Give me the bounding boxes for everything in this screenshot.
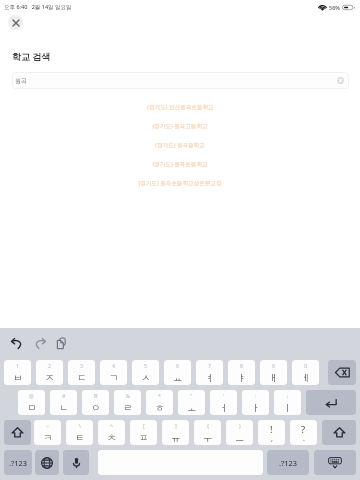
button[interactable]: 원곡	[12, 72, 349, 89]
button[interactable]: ~	[34, 420, 61, 445]
button[interactable]: (경기도) 원곡고등학교	[0, 116, 360, 135]
staticText: .?123	[9, 458, 27, 468]
button[interactable]: *	[146, 390, 173, 415]
staticText: 56%	[329, 4, 340, 11]
button[interactable]: 다시 실행	[31, 335, 47, 351]
button[interactable]: 8	[228, 360, 255, 385]
staticText: (경기도) 원곡초등학교성은분교장	[138, 179, 222, 187]
staticText: ㅈ	[45, 372, 55, 384]
button[interactable]: {	[194, 420, 221, 445]
staticText: ㅜ	[203, 432, 213, 444]
staticText: ㅁ	[27, 402, 37, 414]
button[interactable]: 시프트	[322, 420, 356, 445]
button[interactable]: (경기도) 원곡초등학교	[0, 154, 360, 173]
staticText: (경기도) 안산원곡초등학교	[147, 103, 214, 111]
staticText: ㅑ	[237, 372, 247, 384]
button[interactable]: .?123	[267, 450, 309, 475]
button[interactable]: (경기도) 안산원곡초등학교	[0, 97, 360, 116]
button[interactable]: ]	[162, 420, 189, 445]
button[interactable]: #	[50, 390, 77, 415]
staticText: '	[223, 392, 225, 399]
staticText: ㅕ	[205, 372, 215, 384]
staticText: 2	[48, 362, 51, 369]
staticText: 5	[144, 362, 147, 369]
staticText: ?	[301, 423, 306, 436]
button[interactable]: 언어 변경	[35, 450, 59, 475]
button[interactable]: 7	[196, 360, 223, 385]
staticText: {	[207, 422, 209, 429]
staticText: 6	[176, 362, 179, 369]
staticText: #	[62, 392, 66, 399]
staticText: 7	[208, 362, 211, 369]
button[interactable]: }	[226, 420, 253, 445]
staticText: ㅎ	[155, 402, 165, 414]
button[interactable]: ;	[274, 390, 301, 415]
staticText: ㅊ	[107, 432, 117, 444]
staticText: ,	[271, 434, 273, 444]
button[interactable]: 키보드 숨기기	[314, 450, 356, 475]
button[interactable]: :	[242, 390, 269, 415]
staticText: (경기도) 원곡고등학교	[152, 122, 208, 130]
staticText: 오후 6:40 2월 14일 일요일	[4, 3, 72, 11]
staticText: :	[255, 392, 257, 399]
button[interactable]: [	[130, 420, 157, 445]
button[interactable]: 붙여넣기	[53, 335, 69, 351]
button[interactable]: (경기도) 원곡중학교	[0, 135, 360, 154]
staticText: ₩	[94, 392, 98, 399]
staticText: ㅅ	[141, 372, 151, 384]
button[interactable]: 시프트	[4, 420, 31, 445]
button[interactable]: \	[66, 420, 93, 445]
staticText: ㄴ	[59, 402, 69, 414]
button[interactable]: 3	[68, 360, 95, 385]
staticText: (경기도) 원곡초등학교	[152, 160, 208, 168]
staticText: ㅂ	[13, 372, 23, 384]
staticText: ㅇ	[91, 402, 101, 414]
staticText: ㅠ	[171, 432, 181, 444]
button[interactable]: &	[114, 390, 141, 415]
button[interactable]: ^	[98, 420, 125, 445]
staticText: .?123	[279, 458, 297, 468]
button[interactable]: (경기도) 원곡초등학교성은분교장	[0, 173, 360, 192]
staticText: ㅓ	[219, 402, 229, 414]
button[interactable]: 0	[292, 360, 319, 385]
staticText: ㅡ	[235, 432, 245, 444]
button[interactable]: @	[18, 390, 45, 415]
staticText: ㅐ	[269, 372, 279, 384]
staticText: 4	[112, 362, 115, 369]
staticText: }	[239, 422, 241, 429]
staticText: ]	[175, 422, 177, 429]
staticText: 9	[272, 362, 275, 369]
staticText: ㅣ	[283, 402, 293, 414]
button[interactable]: 입력	[306, 390, 356, 415]
button[interactable]: '	[210, 390, 237, 415]
button[interactable]: .	[290, 420, 317, 445]
staticText: \	[79, 422, 81, 429]
button[interactable]: 1	[4, 360, 31, 385]
staticText: "	[190, 392, 193, 399]
staticText: 학교 검색	[12, 50, 51, 62]
button[interactable]: 6	[164, 360, 191, 385]
button[interactable]: 지우기	[328, 360, 356, 385]
staticText: ㅏ	[251, 402, 261, 414]
staticText: *	[158, 392, 161, 399]
staticText: (경기도) 원곡중학교	[155, 141, 205, 149]
button[interactable]: 지우기	[334, 74, 347, 87]
button[interactable]: 9	[260, 360, 287, 385]
button[interactable]: "	[178, 390, 205, 415]
button[interactable]: 닫기	[8, 15, 23, 30]
button[interactable]: 5	[132, 360, 159, 385]
button[interactable]: 4	[100, 360, 127, 385]
staticText: &	[126, 392, 130, 399]
staticText: 8	[240, 362, 243, 369]
button[interactable]: 음성 입력	[63, 450, 89, 475]
button[interactable]: 2	[36, 360, 63, 385]
staticText: ;	[287, 392, 289, 399]
button[interactable]: ₩	[82, 390, 109, 415]
staticText: 원곡	[15, 77, 27, 85]
button[interactable]: .?123	[4, 450, 32, 475]
staticText: .	[303, 434, 305, 444]
button[interactable]: 실행 취소	[9, 335, 25, 351]
button[interactable]: ,	[258, 420, 285, 445]
staticText: ㄷ	[77, 372, 87, 384]
